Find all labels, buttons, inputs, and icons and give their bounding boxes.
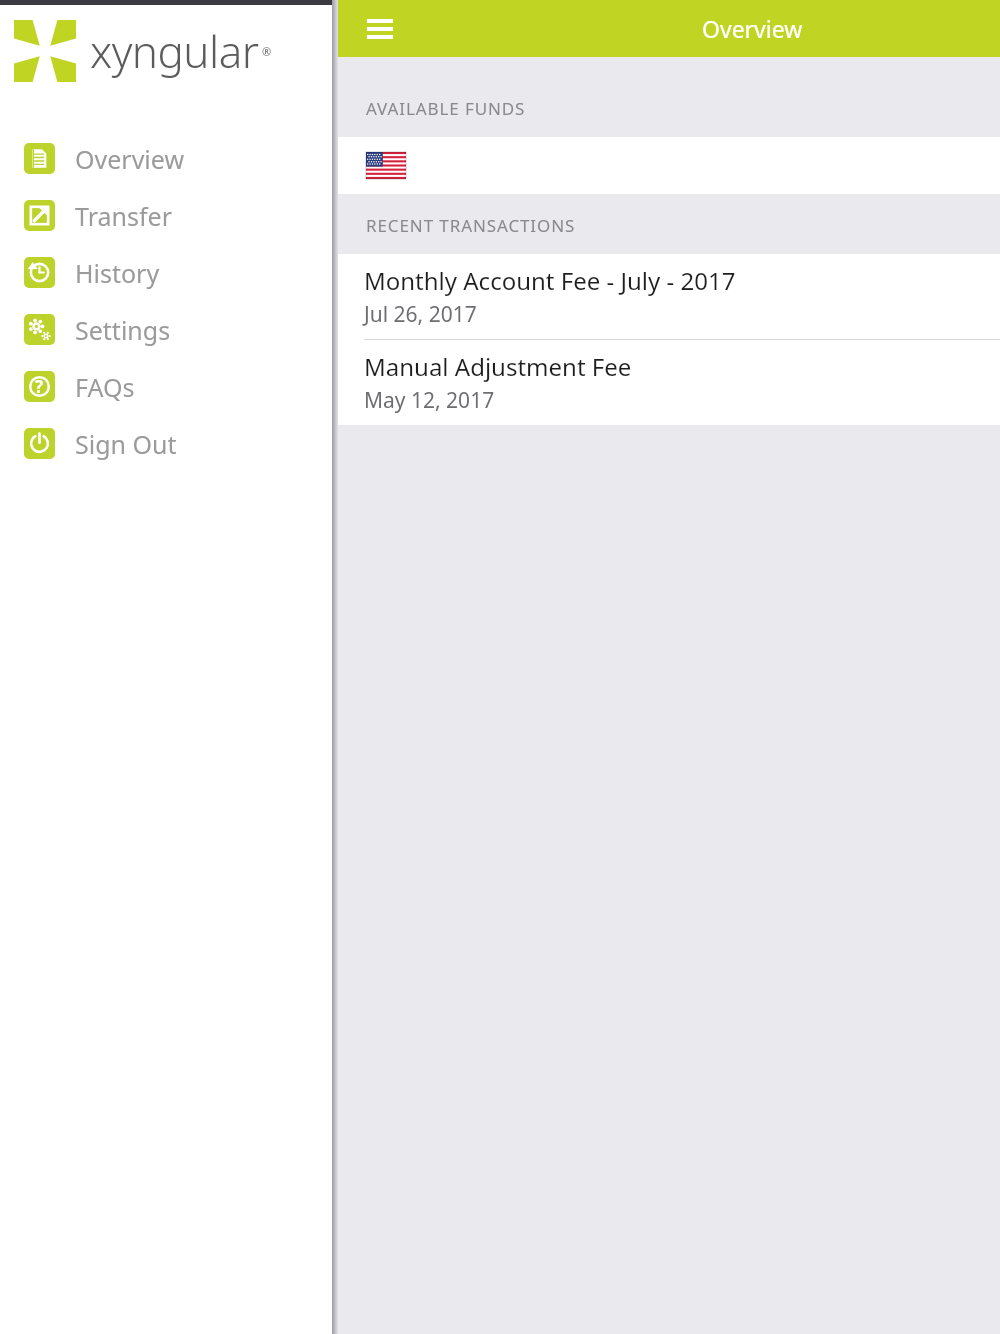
staticText: Sign Out: [75, 427, 177, 461]
staticText: RECENT TRANSACTIONS: [366, 214, 576, 237]
button[interactable]: ?: [0, 358, 332, 415]
button[interactable]: Settings: [0, 301, 332, 358]
button[interactable]: Open navigation menu: [358, 7, 402, 51]
staticText: Settings: [75, 313, 171, 347]
button[interactable]: Manual Adjustment Fee: [338, 340, 1000, 425]
staticText: May 12, 2017: [364, 386, 495, 415]
staticText: History: [75, 256, 160, 290]
button[interactable]: [338, 137, 1000, 194]
staticText: Overview: [75, 142, 185, 176]
staticText: Overview: [702, 13, 803, 44]
staticText: ®: [262, 44, 272, 59]
button[interactable]: History: [0, 244, 332, 301]
staticText: AVAILABLE FUNDS: [366, 97, 526, 120]
staticText: FAQs: [75, 370, 135, 404]
button[interactable]: Transfer: [0, 187, 332, 244]
staticText: Transfer: [75, 199, 172, 233]
staticText: ?: [35, 375, 44, 398]
button[interactable]: Monthly Account Fee - July - 2017: [338, 254, 1000, 339]
staticText: Monthly Account Fee - July - 2017: [364, 264, 736, 297]
staticText: Manual Adjustment Fee: [364, 350, 632, 383]
button[interactable]: Sign Out: [0, 415, 332, 472]
button[interactable]: Overview: [0, 130, 332, 187]
staticText: Jul 26, 2017: [364, 300, 477, 329]
staticText: xyngular: [90, 21, 259, 81]
